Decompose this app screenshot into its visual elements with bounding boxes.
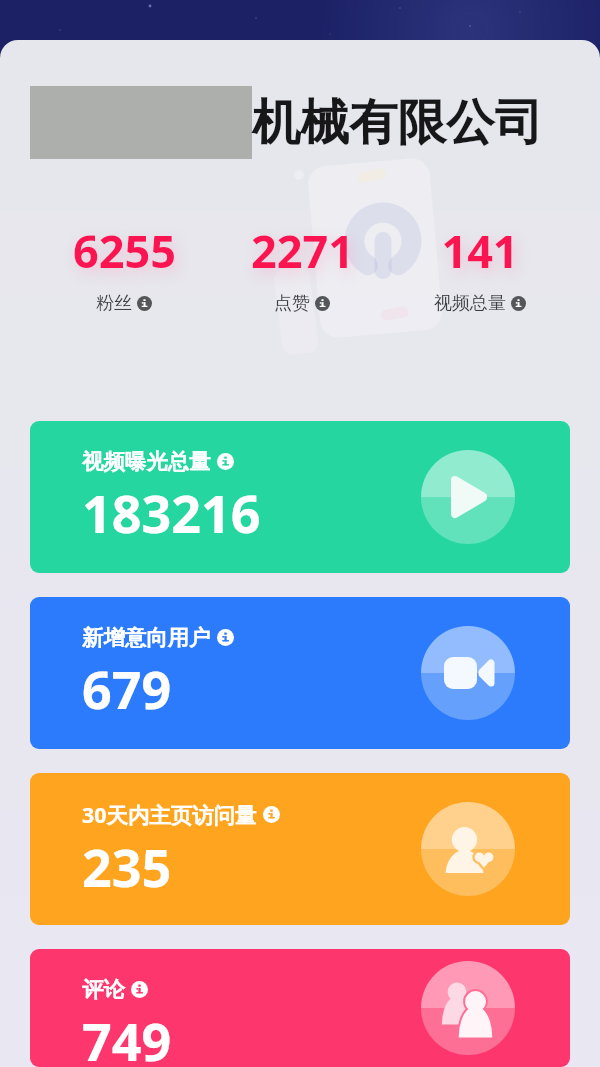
other: 30天内主页访问量 (421, 802, 515, 896)
button[interactable]: 2271 (213, 220, 391, 315)
staticText: 粉丝 (96, 292, 132, 315)
button[interactable]: 141 (391, 220, 569, 315)
button[interactable]: 视频曝光总量 (30, 421, 570, 573)
staticText: 视频曝光总量 (82, 448, 211, 475)
staticText: 141 (441, 220, 519, 281)
staticText: 679 (82, 653, 172, 724)
other: 新增意向用户 (421, 626, 515, 720)
button[interactable]: 30天内主页访问量 (30, 773, 570, 925)
staticText: 749 (82, 1005, 172, 1067)
staticText: 新增意向用户 (82, 624, 211, 651)
staticText: 235 (82, 831, 172, 902)
other: 视频曝光总量 (421, 450, 515, 544)
staticText: 评论 (82, 976, 125, 1003)
staticText: 机械有限公司 (252, 92, 543, 153)
staticText: 183216 (82, 477, 261, 548)
other: 评论 (421, 961, 515, 1055)
staticText: 2271 (251, 220, 354, 281)
button[interactable]: 评论 (30, 949, 570, 1067)
staticText: 6255 (73, 220, 176, 281)
staticText: 30天内主页访问量 (82, 800, 257, 829)
button[interactable]: 6255 (35, 220, 213, 315)
staticText: 视频总量 (434, 292, 506, 315)
button[interactable]: 新增意向用户 (30, 597, 570, 749)
staticText: 点赞 (274, 292, 310, 315)
